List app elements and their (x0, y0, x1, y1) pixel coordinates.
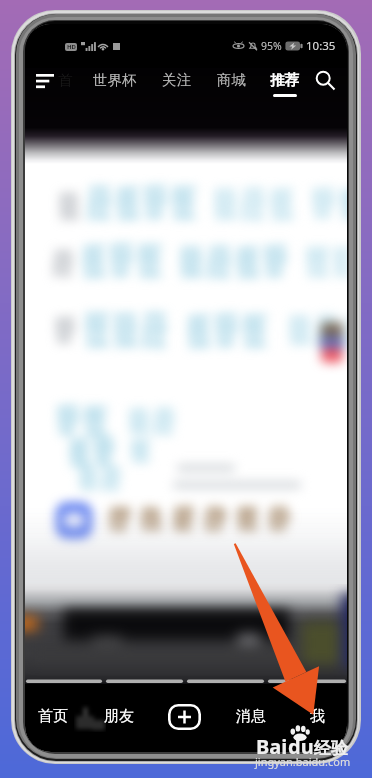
staticText: 消息 (236, 707, 266, 726)
button[interactable]: 关注 (161, 65, 192, 97)
staticText: jingyan.baidu.com (255, 754, 351, 769)
staticText: 首 (58, 71, 73, 89)
staticText: 朋友 (104, 707, 134, 726)
button[interactable]: 消息 (224, 700, 278, 732)
staticText: 世界杯 (93, 71, 137, 89)
staticText: HD (67, 43, 76, 51)
staticText: 10:35 (306, 38, 336, 54)
staticText: Bai (256, 733, 288, 760)
button[interactable]: 推荐 (268, 65, 301, 97)
button[interactable]: Search (312, 67, 338, 93)
staticText: du (288, 733, 314, 760)
staticText: 商城 (217, 71, 246, 89)
staticText: 经验 (314, 738, 348, 759)
staticText: 关注 (162, 71, 191, 89)
staticText: 推荐 (270, 71, 299, 89)
button[interactable]: 首页 (26, 700, 80, 732)
button[interactable]: 商城 (215, 65, 248, 97)
staticText: 95% (261, 39, 282, 53)
button[interactable]: 朋友 (92, 700, 146, 732)
staticText: 我 (310, 707, 325, 726)
button[interactable]: Create post (168, 704, 201, 730)
staticText: 首页 (38, 707, 68, 726)
button[interactable]: Menu (30, 66, 60, 94)
button[interactable]: 世界杯 (92, 65, 138, 97)
button[interactable]: 我 (290, 700, 344, 732)
